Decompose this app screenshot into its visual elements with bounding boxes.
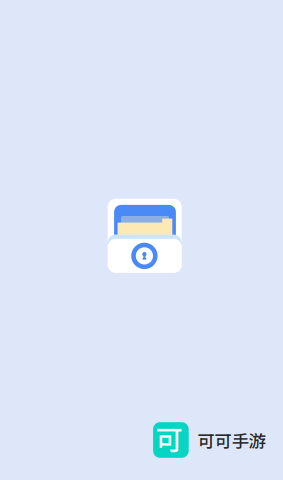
staticText: 可可手游: [198, 428, 266, 453]
button[interactable]: 可可手游: [153, 422, 264, 458]
staticText: 可: [155, 418, 182, 458]
